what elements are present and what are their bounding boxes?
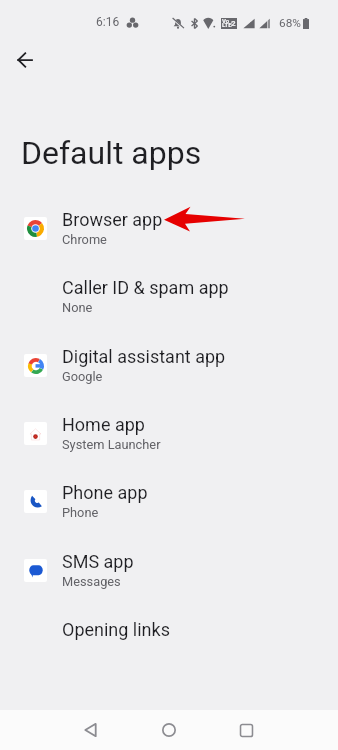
staticText: None bbox=[62, 300, 93, 315]
button[interactable]: Navigate up bbox=[5, 40, 45, 80]
button[interactable]: Home app bbox=[0, 399, 338, 467]
staticText: 6:16 bbox=[96, 15, 120, 29]
staticText: System Launcher bbox=[62, 437, 161, 452]
staticText: 2 bbox=[231, 19, 236, 28]
button[interactable]: Digital assistant app bbox=[0, 331, 338, 399]
button[interactable]: Home bbox=[147, 710, 191, 750]
staticText: Vo bbox=[222, 17, 230, 24]
staticText: Home app bbox=[62, 414, 145, 435]
button[interactable]: Recent apps bbox=[224, 710, 268, 750]
staticText: Phone app bbox=[62, 482, 148, 503]
staticText: R bbox=[250, 21, 255, 29]
staticText: SMS app bbox=[62, 551, 134, 572]
staticText: Google bbox=[62, 369, 103, 384]
staticText: Browser app bbox=[62, 209, 163, 230]
button[interactable]: Browser app bbox=[0, 194, 338, 262]
staticText: Chrome bbox=[62, 232, 107, 247]
button[interactable]: Caller ID & spam app bbox=[0, 262, 338, 330]
staticText: Caller ID & spam app bbox=[62, 277, 229, 298]
button[interactable]: Back bbox=[68, 710, 112, 750]
button[interactable]: Opening links bbox=[0, 604, 338, 654]
staticText: 68% bbox=[279, 16, 301, 30]
staticText: LTE bbox=[222, 21, 232, 28]
button[interactable]: Phone app bbox=[0, 467, 338, 535]
staticText: Opening links bbox=[62, 619, 170, 640]
staticText: Phone bbox=[62, 505, 99, 520]
staticText: Digital assistant app bbox=[62, 346, 226, 367]
staticText: Default apps bbox=[21, 134, 202, 172]
staticText: Messages bbox=[62, 574, 121, 589]
button[interactable]: SMS app bbox=[0, 536, 338, 604]
